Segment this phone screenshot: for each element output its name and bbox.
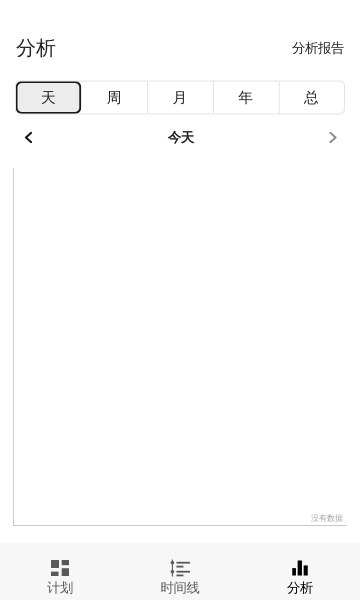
staticText: 天 [41,88,56,106]
button[interactable]: 总 [279,81,344,114]
button[interactable]: 周 [81,81,147,114]
staticText: 总 [304,88,319,106]
staticText: 计划 [47,579,73,596]
staticText: 分析报告 [292,40,344,56]
staticText: 时间线 [160,579,199,596]
button[interactable]: 计划 [0,544,120,600]
button[interactable]: 下一天 [311,121,355,153]
staticText: 周 [107,88,122,106]
button[interactable]: 分析报告 [280,32,344,64]
staticText: 没有数据 [311,513,343,523]
button[interactable]: 时间线 [120,544,240,600]
button[interactable]: 上一天 [6,121,50,153]
staticText: 月 [172,88,187,106]
staticText: 年 [238,88,253,106]
button[interactable]: 分析 [240,544,360,600]
button[interactable]: 年 [213,81,279,114]
staticText: 分析 [287,579,313,596]
staticText: 分析 [16,36,56,60]
staticText: 今天 [168,129,194,146]
button[interactable]: 月 [147,81,213,114]
button[interactable]: 天 [15,81,81,114]
